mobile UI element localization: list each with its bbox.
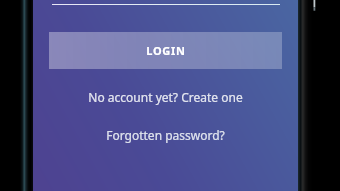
- other: Device bezel detail: [312, 0, 318, 16]
- button[interactable]: No account yet? Create one: [78, 84, 253, 110]
- button[interactable]: LOGIN: [49, 32, 282, 69]
- button[interactable]: Forgotten password?: [96, 122, 235, 148]
- staticText: No account yet? Create one: [88, 89, 243, 105]
- staticText: Forgotten password?: [106, 127, 225, 143]
- staticText: LOGIN: [146, 43, 186, 58]
